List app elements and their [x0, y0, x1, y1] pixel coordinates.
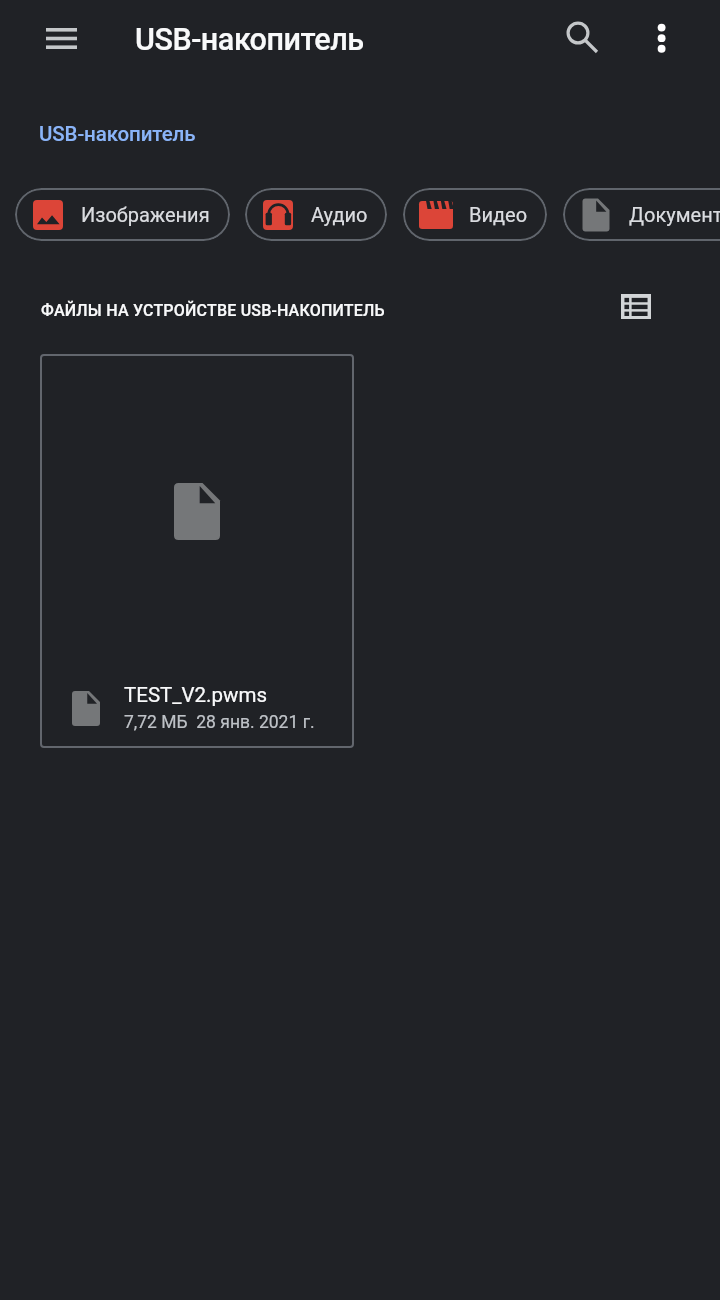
staticText: Изображения [81, 203, 210, 226]
button[interactable]: Switch to list view [608, 278, 664, 334]
button[interactable]: Open navigation drawer [31, 9, 92, 67]
button[interactable]: More options [633, 10, 689, 66]
button[interactable]: Изображения [15, 188, 230, 241]
staticText: ФАЙЛЫ НА УСТРОЙСТВЕ USB-НАКОПИТЕЛЬ [41, 301, 385, 320]
staticText: TEST_V2.pwms [124, 683, 267, 707]
staticText: Видео [469, 203, 528, 226]
button[interactable]: TEST_V2.pwms [40, 354, 354, 748]
staticText: Аудио [311, 203, 368, 226]
staticText: 7,72 МБ 28 янв. 2021 г. [124, 712, 315, 733]
staticText: Документы [629, 203, 720, 226]
button[interactable]: Документы [563, 188, 720, 241]
button[interactable]: Search [550, 5, 606, 61]
button[interactable]: USB-накопитель [31, 114, 204, 154]
button[interactable]: Аудио [245, 188, 387, 241]
staticText: USB-накопитель [135, 22, 364, 58]
staticText: USB-накопитель [39, 122, 196, 146]
button[interactable]: Видео [403, 188, 547, 241]
